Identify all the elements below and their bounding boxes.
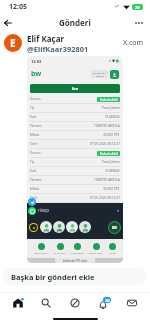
staticText: bw [31,69,42,79]
button[interactable]: Search [35,293,57,313]
staticText: 20 [105,298,110,303]
staticText: Kod [30,169,36,173]
staticText: Kabul edildi [100,98,118,102]
staticText: E [10,36,16,50]
staticText: @ElifKaar392801 [27,44,89,54]
staticText: Miktar [30,187,40,191]
staticText: 31430843 [105,115,120,119]
staticText: Cebe Cevaz [71,251,84,254]
staticText: 07.05.2025 08:12:37 [90,196,120,200]
staticText: 12:05 [9,2,27,12]
button[interactable]: Notifications [93,293,115,313]
staticText: bakiye [96,74,104,77]
button[interactable]: 12:03 [27,56,123,263]
staticText: BW [112,226,117,230]
staticText: Bi' Bir Kart [54,251,66,254]
staticText: Para Çekme [102,160,120,164]
staticText: X.com [123,38,144,48]
staticText: Yöntem [30,178,42,182]
staticText: TÜRKİYE VAKIFLA [94,178,120,182]
staticText: TÜRKİYE VAKIFLA [94,124,120,128]
staticText: Kod [30,115,36,119]
staticText: Kabul edildi [100,152,118,156]
staticText: Bonus Yağa [89,251,103,254]
staticText: 30 000 TRY [93,71,106,74]
staticText: Yöntem [30,124,42,128]
staticText: Tip [30,106,35,110]
staticText: Para Çekme [102,106,120,110]
staticText: 12:03 [31,59,42,64]
staticText: Tip [30,160,35,164]
staticText: 31430843 [105,169,120,173]
staticText: × [117,208,120,213]
staticText: Başka bir gönderi ekle [11,272,95,282]
button[interactable]: Home [7,293,29,313]
button[interactable]: Başka bir gönderi ekle [3,268,147,285]
staticText: Ara [72,86,79,91]
button[interactable]: Back [1,16,15,30]
staticText: 30.000 TRY [103,133,120,137]
staticText: 07.05.2025 08:12:37 [90,142,120,146]
button[interactable]: Messages [121,293,143,313]
staticText: Tarih [30,196,38,200]
button[interactable]: More options [132,16,146,30]
staticText: Miktar [30,133,40,137]
staticText: between791.com [63,259,88,263]
staticText: Gönderi [59,17,91,28]
staticText: TÜRKÇE [38,209,50,213]
staticText: Profil [110,251,116,254]
staticText: Elif Kaçar [27,33,65,44]
staticText: Tarih [30,142,38,146]
staticText: Durum [30,151,41,155]
staticText: Hep Tamam [34,251,48,254]
button[interactable]: Grok [64,293,86,313]
button[interactable]: E [4,31,144,55]
staticText: Durum [30,97,41,101]
staticText: 30.000 TRY [103,187,120,191]
staticText: 20 [135,5,140,10]
